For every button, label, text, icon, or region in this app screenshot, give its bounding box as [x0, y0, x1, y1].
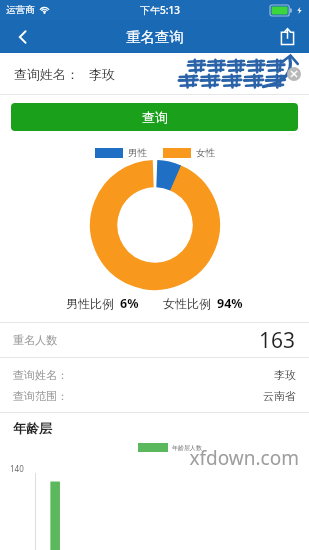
staticText: 李玫 [274, 368, 296, 382]
staticText: 查询姓名： [14, 66, 79, 82]
staticText: 重名人数 [13, 333, 57, 347]
staticText: 140 [10, 463, 24, 474]
staticText: 163 [259, 326, 296, 355]
staticText: 查询 [142, 109, 168, 125]
staticText: 查询姓名： [13, 368, 68, 382]
staticText: 6% [120, 295, 139, 312]
staticText: 下午5:13 [140, 3, 180, 17]
button[interactable]: 查询姓名： [13, 364, 296, 385]
staticText: 重名查询 [126, 28, 184, 46]
button[interactable]: Back [0, 20, 46, 53]
button[interactable]: 查询 [11, 103, 298, 131]
staticText: 年龄层 [13, 420, 52, 436]
button[interactable]: Share [265, 20, 309, 53]
staticText: 女性比例 [163, 296, 211, 311]
staticText: 男性 [128, 147, 147, 159]
button[interactable]: Promo [171, 53, 303, 95]
staticText: 运营商 [6, 4, 35, 16]
staticText: 云南省 [263, 389, 296, 403]
staticText: xfdown.com [189, 445, 299, 471]
button[interactable]: 查询范围： [13, 385, 296, 406]
staticText: 男性比例 [66, 296, 114, 311]
button[interactable]: 重名人数 [13, 323, 296, 357]
staticText: 李玫 [89, 66, 115, 82]
staticText: 94% [217, 295, 243, 312]
staticText: 年龄层人数 [172, 444, 202, 452]
staticText: 查询范围： [13, 389, 68, 403]
button[interactable]: Clear [287, 67, 301, 81]
staticText: 女性 [196, 147, 215, 159]
